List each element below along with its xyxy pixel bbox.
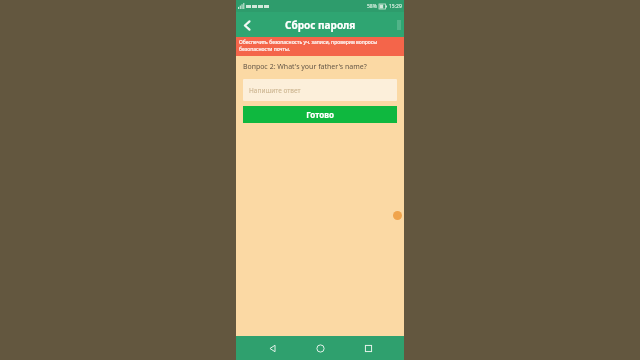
staticText: Готово bbox=[306, 109, 334, 120]
button[interactable]: Готово bbox=[243, 106, 397, 123]
staticText: 15:29 bbox=[389, 3, 402, 10]
button[interactable]: Recents bbox=[356, 336, 380, 360]
staticText: Сброс пароля bbox=[285, 18, 356, 32]
button[interactable]: Back bbox=[260, 336, 284, 360]
staticText: 58% bbox=[367, 3, 377, 10]
button[interactable]: Back bbox=[236, 14, 258, 36]
button[interactable]: Напишите ответ bbox=[243, 79, 397, 101]
staticText: Напишите ответ bbox=[249, 86, 301, 95]
button[interactable]: Home bbox=[308, 336, 332, 360]
staticText: Обеспечить безопасность уч. записи, пров… bbox=[239, 39, 401, 53]
staticText: Вопрос 2: What's your father's name? bbox=[243, 62, 367, 72]
